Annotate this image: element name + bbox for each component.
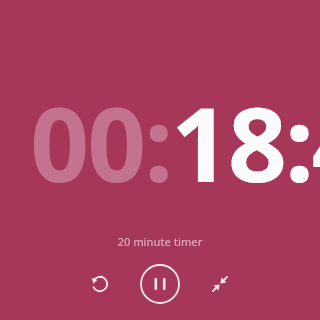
button[interactable]: Pause timer bbox=[138, 262, 182, 306]
button[interactable]: Collapse bbox=[198, 262, 242, 306]
staticText: 20 minute timer bbox=[0, 234, 320, 249]
staticText: 00:18:49 bbox=[30, 72, 320, 212]
button[interactable]: Restart timer bbox=[78, 262, 122, 306]
